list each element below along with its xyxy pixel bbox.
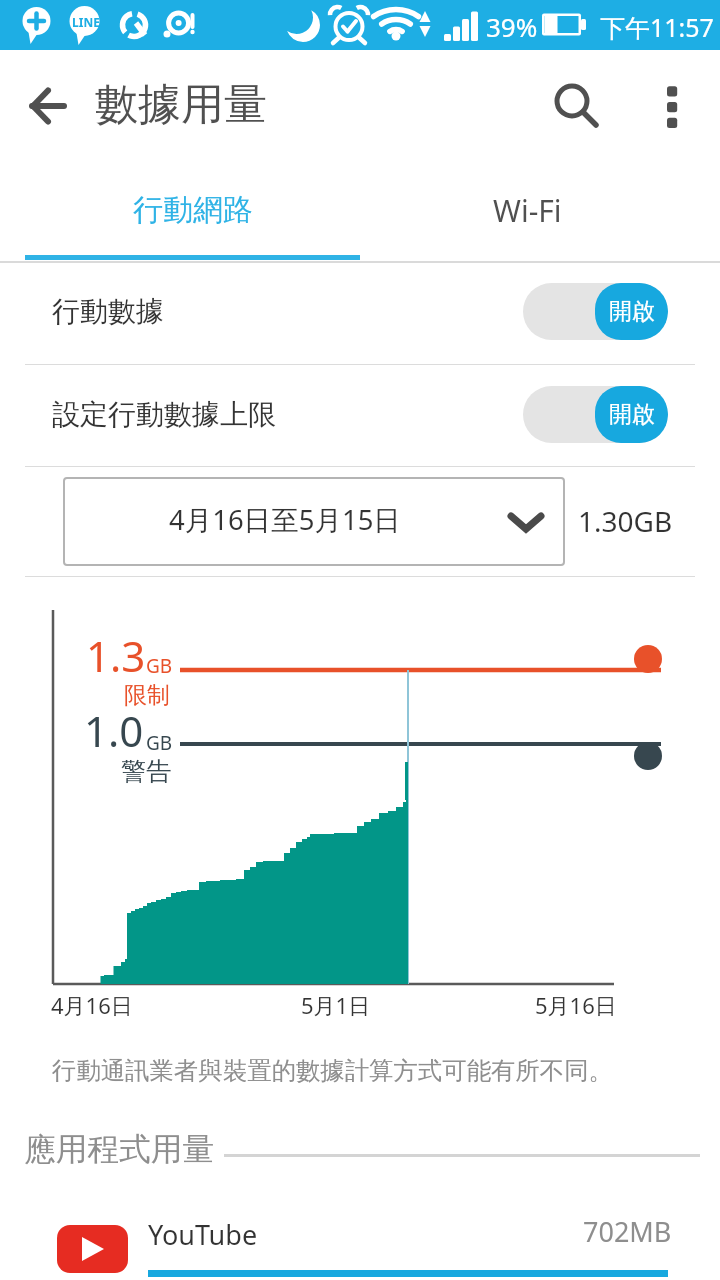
staticText: GB [146,730,173,756]
staticText: YouTube [148,1216,258,1253]
staticText: 5月16日 [535,990,617,1020]
button[interactable]: 行動網路 [25,163,360,261]
staticText: 1.30GB [578,502,673,540]
staticText: Wi-Fi [493,190,562,231]
staticText: 702MB [583,1213,672,1250]
staticText: 1.0 [84,702,144,759]
staticText: 開啟 [609,297,655,326]
staticText: 行動網路 [133,191,253,229]
button[interactable]: Back [19,77,76,134]
button[interactable]: Wi-Fi [360,163,695,261]
staticText: 39% [486,9,538,44]
button[interactable]: 4月16日至5月15日 [63,477,565,566]
staticText: LINE [72,14,100,30]
staticText: 下午11:57 [600,10,714,44]
button[interactable]: 設定行動數據上限 [0,364,720,464]
staticText: 限制 [124,681,170,710]
staticText: 4月16日至5月15日 [169,501,401,539]
staticText: GB [146,653,173,679]
button[interactable]: YouTube [0,1200,720,1280]
staticText: 行動數據 [52,294,164,329]
staticText: 數據用量 [95,78,267,132]
button[interactable]: 行動數據 [0,261,720,361]
button[interactable]: Search [548,77,605,134]
button[interactable]: More options [643,78,700,135]
staticText: 1.3 [86,627,146,684]
staticText: 警告 [121,756,171,787]
staticText: 5月1日 [301,990,371,1020]
staticText: 4月16日 [51,990,133,1020]
staticText: 應用程式用量 [24,1129,215,1169]
staticText: 行動通訊業者與裝置的數據計算方式可能有所不同。 [52,1056,613,1087]
staticText: 開啟 [609,400,655,429]
staticText: 設定行動數據上限 [52,397,276,432]
